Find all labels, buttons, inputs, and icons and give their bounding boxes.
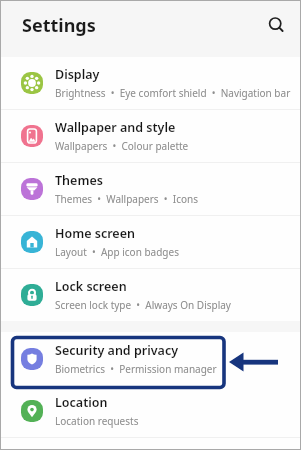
staticText: Brightness • Eye comfort shield • Naviga… bbox=[55, 86, 291, 100]
button[interactable] bbox=[265, 14, 289, 38]
staticText: Biometrics • Permission manager bbox=[55, 362, 217, 376]
staticText: Screen lock type • Always On Display bbox=[55, 298, 231, 312]
button[interactable]: Display bbox=[0, 57, 301, 109]
button[interactable]: Wallpaper and style bbox=[0, 110, 301, 162]
button[interactable]: Themes bbox=[0, 163, 301, 215]
staticText: Themes bbox=[55, 172, 103, 189]
button[interactable]: Lock screen bbox=[0, 269, 301, 321]
staticText: Themes • Wallpapers • Icons bbox=[55, 192, 199, 206]
button[interactable]: Home screen bbox=[0, 216, 301, 268]
staticText: Wallpapers • Colour palette bbox=[55, 139, 189, 153]
staticText: Location requests bbox=[55, 414, 139, 428]
staticText: Layout • App icon badges bbox=[55, 245, 179, 259]
button[interactable]: Location bbox=[0, 385, 301, 437]
staticText: Lock screen bbox=[55, 278, 127, 295]
staticText: Location bbox=[55, 394, 108, 411]
staticText: Display bbox=[55, 66, 100, 83]
staticText: Settings bbox=[22, 13, 96, 38]
staticText: Home screen bbox=[55, 225, 135, 242]
staticText: Security and privacy bbox=[55, 342, 179, 359]
button[interactable]: Security and privacy bbox=[0, 332, 301, 385]
staticText: Wallpaper and style bbox=[55, 119, 176, 136]
